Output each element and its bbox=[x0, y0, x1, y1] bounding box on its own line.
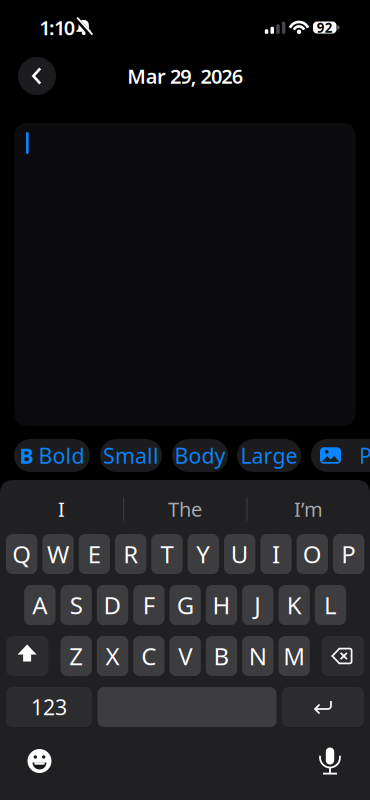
staticText: 92 bbox=[317, 19, 333, 36]
staticText: A bbox=[32, 589, 47, 621]
staticText: 1:10 bbox=[39, 14, 75, 41]
staticText: U bbox=[231, 538, 249, 570]
staticText: N bbox=[249, 640, 267, 672]
staticText: O bbox=[303, 538, 322, 570]
staticText: S bbox=[70, 589, 83, 621]
staticText: L bbox=[324, 589, 337, 621]
staticText: W bbox=[47, 538, 69, 570]
staticText: Large bbox=[240, 441, 297, 470]
staticText: Mar 29, 2026 bbox=[127, 63, 243, 89]
staticText: J bbox=[254, 589, 261, 621]
staticText: I bbox=[58, 496, 65, 522]
staticText: V bbox=[178, 640, 192, 672]
staticText: Body bbox=[174, 441, 225, 470]
staticText: Q bbox=[12, 538, 31, 570]
staticText: I bbox=[272, 538, 280, 570]
staticText: Bold bbox=[38, 441, 84, 470]
staticText: Small bbox=[103, 441, 159, 470]
staticText: C bbox=[141, 640, 156, 672]
staticText: R bbox=[123, 538, 138, 570]
staticText: X bbox=[105, 640, 119, 672]
staticText: Z bbox=[69, 640, 83, 672]
staticText: E bbox=[88, 538, 101, 570]
staticText: B bbox=[19, 441, 33, 470]
staticText: P bbox=[341, 538, 356, 570]
staticText: K bbox=[287, 589, 302, 621]
staticText: T bbox=[160, 538, 173, 570]
staticText: M bbox=[283, 640, 305, 672]
staticText: The bbox=[168, 496, 202, 522]
staticText: Y bbox=[196, 538, 210, 570]
staticText: G bbox=[177, 589, 194, 621]
staticText: I’m bbox=[294, 496, 323, 522]
staticText: H bbox=[212, 589, 230, 621]
staticText: D bbox=[103, 589, 121, 621]
staticText: 123 bbox=[31, 693, 67, 721]
staticText: F bbox=[143, 589, 155, 621]
staticText: B bbox=[213, 640, 229, 672]
staticText: Ph bbox=[359, 441, 370, 470]
